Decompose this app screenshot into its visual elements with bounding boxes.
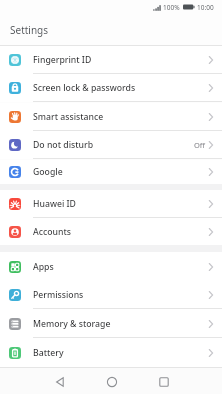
staticText: Smart assistance <box>33 111 104 123</box>
staticText: Permissions <box>33 289 84 301</box>
button[interactable]: Accounts <box>0 218 222 246</box>
button[interactable]: Huawei ID <box>0 190 222 218</box>
staticText: Huawei ID <box>33 198 76 210</box>
staticText: Settings <box>10 23 49 37</box>
button[interactable] <box>159 377 169 387</box>
button[interactable]: Google <box>0 160 222 184</box>
button[interactable]: Battery <box>0 338 222 367</box>
staticText: 10:00 <box>197 3 214 12</box>
button[interactable]: Apps <box>0 252 222 281</box>
staticText: Off <box>194 140 206 150</box>
staticText: Do not disturb <box>33 139 94 151</box>
button[interactable]: Permissions <box>0 280 222 309</box>
staticText: 100% <box>163 3 180 12</box>
button[interactable] <box>107 377 117 387</box>
button[interactable] <box>55 377 65 387</box>
button[interactable]: Do not disturb <box>0 131 222 159</box>
button[interactable]: Smart assistance <box>0 103 222 131</box>
button[interactable]: Memory & storage <box>0 309 222 338</box>
staticText: Memory & storage <box>33 318 111 330</box>
staticText: Screen lock & passwords <box>33 82 136 94</box>
staticText: Apps <box>33 261 54 273</box>
staticText: Accounts <box>33 226 71 238</box>
button[interactable]: Screen lock & passwords <box>0 74 222 102</box>
button[interactable]: Fingerprint ID <box>0 46 222 74</box>
staticText: Google <box>33 166 63 178</box>
staticText: Battery <box>33 347 64 359</box>
staticText: Fingerprint ID <box>33 54 92 66</box>
